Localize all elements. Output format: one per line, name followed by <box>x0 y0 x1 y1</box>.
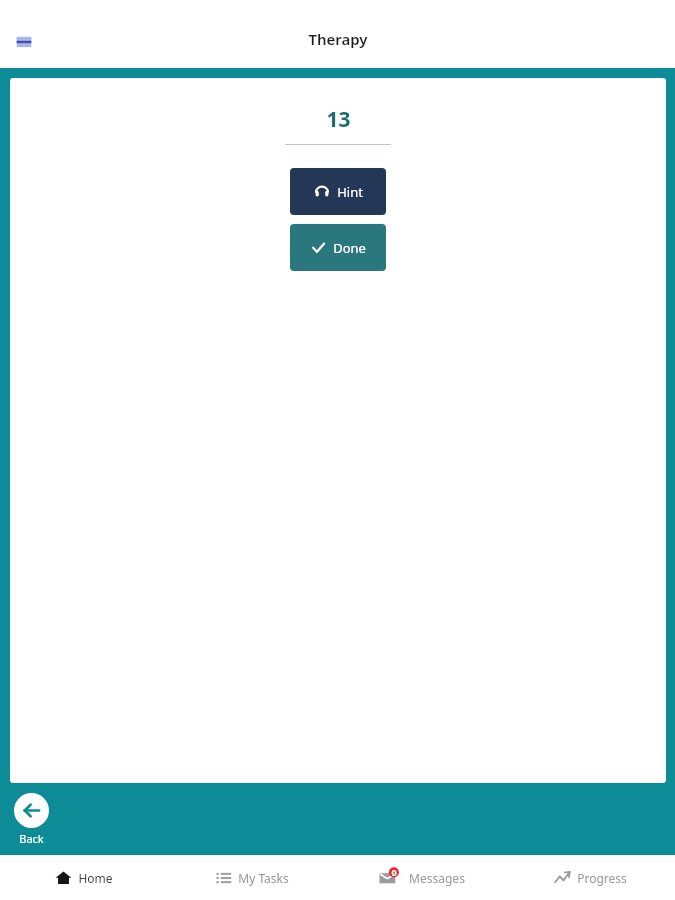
staticText: Home <box>78 870 113 886</box>
button[interactable]: Done <box>290 224 386 271</box>
staticText: My Tasks <box>238 870 289 886</box>
button[interactable]: Home <box>0 855 168 900</box>
button[interactable]: Progress <box>506 855 675 900</box>
staticText: 13 <box>326 105 351 134</box>
button[interactable]: My Tasks <box>168 855 337 900</box>
staticText: Back <box>19 831 44 846</box>
staticText: Done <box>333 239 366 257</box>
staticText: Hint <box>337 183 363 201</box>
staticText: Messages <box>409 870 465 886</box>
button[interactable]: Back <box>12 793 51 846</box>
staticText: 0 <box>391 866 397 878</box>
staticText: Progress <box>577 870 627 886</box>
button[interactable]: 0 <box>337 855 506 900</box>
button[interactable]: Menu <box>8 26 40 58</box>
button[interactable]: Hint <box>290 168 386 215</box>
staticText: Therapy <box>308 29 368 49</box>
other: Back <box>14 793 49 828</box>
